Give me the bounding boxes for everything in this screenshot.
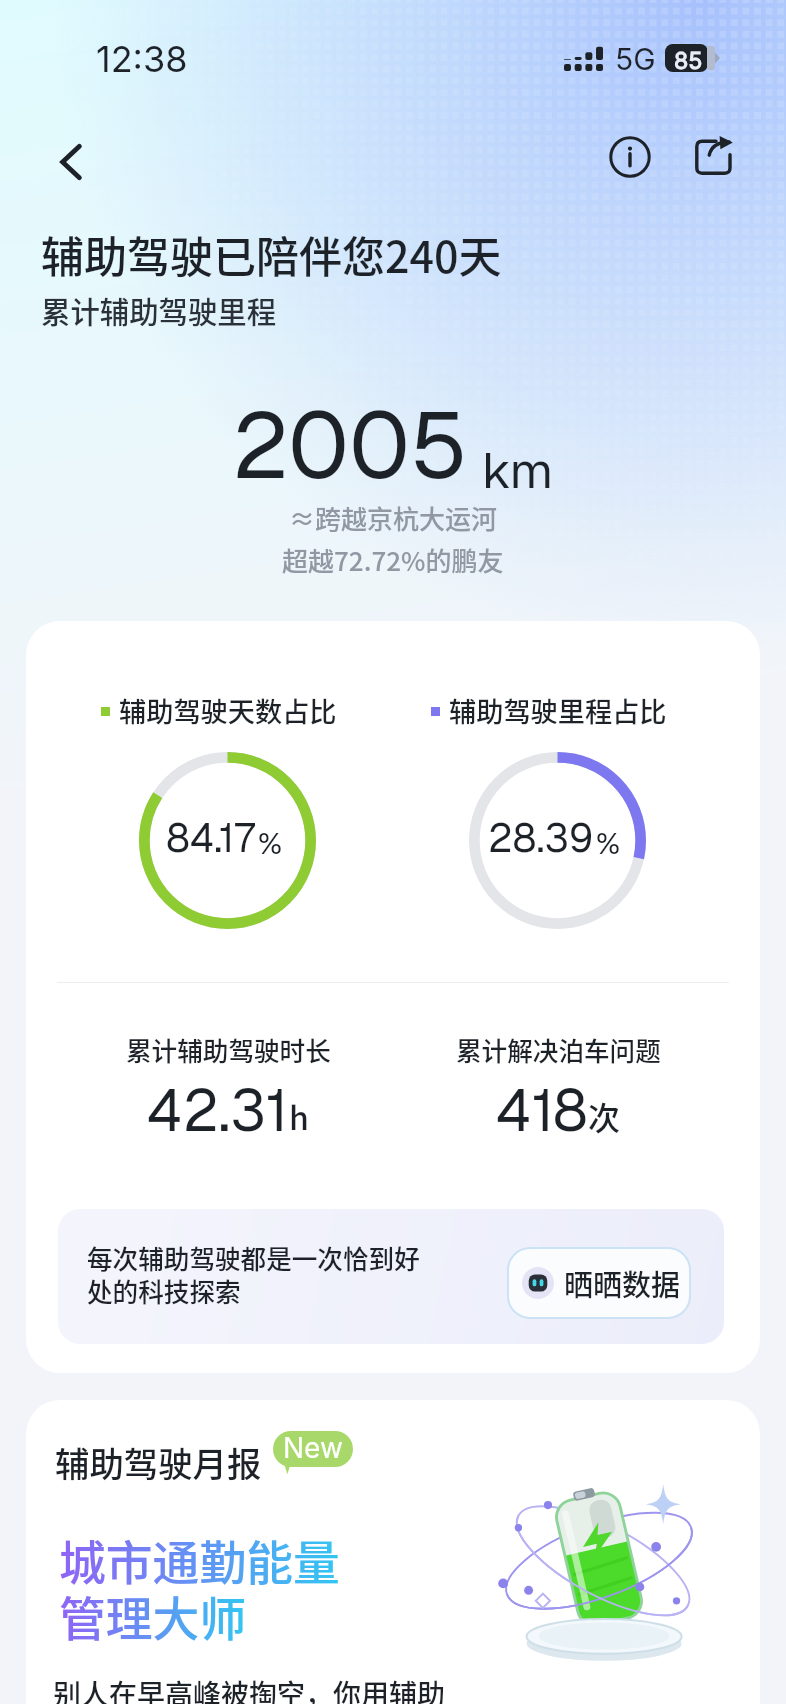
- staticText: New: [283, 1431, 343, 1465]
- staticText: 84.17: [166, 812, 256, 863]
- staticText: 418: [496, 1073, 588, 1148]
- staticText: %: [258, 824, 283, 863]
- staticText: 辅助驾驶月报: [55, 1437, 262, 1487]
- staticText: h: [289, 1093, 309, 1139]
- button[interactable]: Info: [586, 113, 674, 201]
- staticText: %: [596, 824, 621, 863]
- button[interactable]: Share: [670, 112, 758, 200]
- staticText: 辅助驾驶已陪伴您240天: [41, 223, 502, 285]
- staticText: 5G: [615, 41, 656, 77]
- staticText: 管理大师: [59, 1582, 247, 1650]
- staticText: 每次辅助驾驶都是一次恰到好 处的科技探索: [87, 1239, 420, 1310]
- staticText: ≈跨越京杭大运河: [289, 499, 498, 537]
- staticText: 2005: [232, 386, 468, 506]
- button[interactable]: 辅助驾驶月报: [26, 1400, 760, 1704]
- button[interactable]: 晒晒数据: [508, 1248, 690, 1318]
- staticText: 28.39: [488, 812, 594, 863]
- staticText: 42.31: [147, 1073, 289, 1148]
- staticText: 辅助驾驶里程占比: [449, 690, 667, 729]
- staticText: 别人在早高峰被掏空，你用辅助: [53, 1673, 446, 1704]
- button[interactable]: Back: [27, 118, 115, 206]
- staticText: 累计解决泊车问题: [456, 1031, 661, 1068]
- staticText: 累计辅助驾驶时长: [126, 1031, 331, 1068]
- staticText: 85: [674, 47, 703, 75]
- staticText: km: [482, 438, 554, 503]
- staticText: 晒晒数据: [564, 1262, 681, 1304]
- staticText: 累计辅助驾驶里程: [41, 289, 277, 332]
- staticText: 城市通勤能量: [59, 1526, 340, 1594]
- staticText: 辅助驾驶天数占比: [119, 690, 337, 729]
- staticText: 次: [588, 1093, 621, 1139]
- staticText: 12:38: [96, 37, 188, 81]
- staticText: 超越72.72%的鹏友: [282, 541, 504, 579]
